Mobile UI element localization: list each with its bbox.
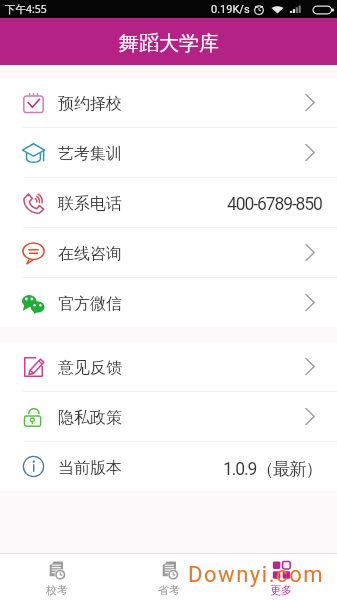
staticText: 当前版本 [58, 458, 122, 478]
other: 预约择校 [22, 91, 45, 114]
button[interactable]: 校考 [0, 554, 113, 600]
staticText: 联系电话 [58, 194, 122, 214]
staticText: 意见反馈 [58, 358, 122, 378]
staticText: 舞蹈大学库 [119, 31, 219, 56]
button[interactable]: 隐私政策 [0, 392, 337, 441]
staticText: Downyi.com [188, 562, 325, 588]
other: 隐私政策 [22, 405, 45, 428]
button[interactable]: 联系电话 [0, 178, 337, 227]
staticText: 下午4:55 [5, 2, 47, 16]
other: 联系电话 [22, 191, 45, 214]
staticText: 在线咨询 [58, 244, 122, 264]
staticText: 0.19K/s [211, 3, 250, 16]
staticText: 隐私政策 [58, 408, 122, 428]
other: 官方微信 [22, 291, 45, 314]
other: 当前版本 [22, 455, 45, 478]
button[interactable]: 省考 [113, 554, 225, 600]
staticText: 省考 [158, 583, 180, 597]
other: 意见反馈 [22, 355, 45, 378]
button[interactable]: 意见反馈 [0, 342, 337, 391]
staticText: 官方微信 [58, 294, 122, 314]
staticText: 校考 [46, 583, 68, 597]
other: 在线咨询 [22, 241, 45, 264]
staticText: 预约择校 [58, 94, 122, 114]
button[interactable]: 预约择校 [0, 78, 337, 127]
button[interactable]: 当前版本 [0, 442, 337, 491]
staticText: 1.0.9（最新） [223, 458, 322, 480]
other: 艺考集训 [22, 141, 45, 164]
button[interactable]: 官方微信 [0, 278, 337, 327]
button[interactable]: 更多 [225, 554, 337, 600]
staticText: 400-6789-850 [227, 194, 322, 215]
button[interactable]: 在线咨询 [0, 228, 337, 277]
button[interactable]: 艺考集训 [0, 128, 337, 177]
staticText: 更多 [270, 583, 292, 597]
staticText: 艺考集训 [58, 144, 122, 164]
